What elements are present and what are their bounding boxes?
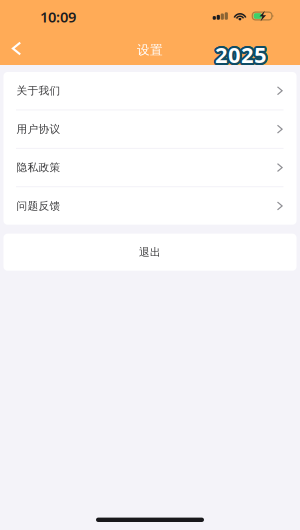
staticText: 2025 [214, 39, 266, 69]
staticText: 2025 [213, 39, 265, 69]
staticText: 10:09 [40, 7, 76, 27]
staticText: 用户协议 [16, 122, 60, 136]
staticText: 2025 [216, 38, 268, 68]
button[interactable]: 隐私政策 [3, 149, 296, 186]
staticText: 2025 [217, 39, 269, 69]
staticText: 设置 [137, 42, 163, 58]
staticText: 2025 [214, 40, 266, 70]
button[interactable]: 退出 [3, 234, 296, 271]
staticText: 2025 [216, 39, 268, 69]
staticText: 2025 [214, 39, 266, 69]
staticText: 隐私政策 [16, 161, 60, 174]
staticText: 2025 [213, 40, 265, 70]
staticText: 2025 [215, 41, 267, 71]
staticText: 2025 [213, 39, 265, 69]
button[interactable]: 用户协议 [3, 110, 296, 148]
staticText: 问题反馈 [16, 199, 60, 213]
staticText: 2025 [214, 38, 266, 68]
staticText: 2025 [215, 41, 267, 71]
button[interactable]: Back [0, 32, 33, 65]
staticText: 2025 [214, 41, 266, 71]
staticText: 2025 [215, 38, 267, 68]
staticText: 2025 [215, 39, 267, 69]
staticText: 2025 [216, 39, 268, 69]
staticText: 2025 [216, 38, 268, 68]
button[interactable]: 关于我们 [3, 72, 296, 109]
staticText: 2025 [216, 40, 268, 70]
staticText: 2025 [215, 37, 267, 67]
staticText: 2025 [217, 39, 269, 69]
staticText: 退出 [139, 245, 161, 259]
staticText: 2025 [217, 40, 269, 70]
staticText: 2025 [216, 41, 268, 71]
staticText: 关于我们 [16, 84, 60, 97]
staticText: 2025 [216, 41, 268, 71]
button[interactable]: 问题反馈 [3, 187, 296, 225]
staticText: 2025 [214, 38, 266, 68]
staticText: 2025 [214, 41, 266, 71]
